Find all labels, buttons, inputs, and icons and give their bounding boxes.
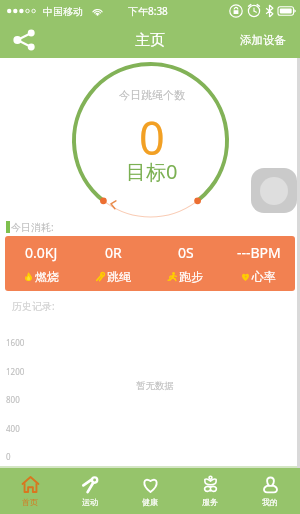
staticText: 首页 [22,497,38,507]
staticText: 1600 [6,337,25,348]
staticText: 0.0KJ [25,243,58,262]
staticText: 跑步 [179,269,203,284]
button[interactable]: 0S [149,236,222,291]
staticText: 目标0 [126,158,178,185]
staticText: 中国移动 [43,5,83,18]
staticText: ---BPM [237,243,281,262]
staticText: 暂无数据 [136,380,174,392]
staticText: 运动 [82,497,98,507]
staticText: 今日跳绳个数 [119,88,185,102]
button[interactable]: 首页 [0,468,60,514]
staticText: 0 [139,107,165,168]
button[interactable]: 我的 [240,468,300,514]
staticText: 今日消耗: [11,220,54,234]
staticText: 1200 [6,366,25,377]
staticText: 服务 [202,497,218,507]
button[interactable]: ---BPM [222,236,295,291]
button[interactable]: 服务 [180,468,240,514]
staticText: 跳绳 [107,269,131,284]
staticText: 历史记录: [12,299,55,313]
staticText: 我的 [262,497,278,507]
staticText: 800 [6,394,20,405]
staticText: 0 [6,451,11,462]
button[interactable]: 健康 [120,468,180,514]
button[interactable]: Device [251,168,297,213]
staticText: 主页 [135,31,165,50]
button[interactable]: Share [10,26,38,54]
button[interactable]: 0R [77,236,149,291]
staticText: 燃烧 [35,269,59,284]
staticText: 添加设备 [240,33,286,47]
button[interactable]: 添加设备 [232,25,300,55]
staticText: 下午8:38 [128,4,168,18]
staticText: 0S [178,243,194,262]
button[interactable]: 0.0KJ [5,236,77,291]
button[interactable]: 运动 [60,468,120,514]
staticText: 400 [6,423,20,434]
staticText: 健康 [142,497,158,507]
staticText: 心率 [252,269,276,284]
staticText: 0R [105,243,122,262]
